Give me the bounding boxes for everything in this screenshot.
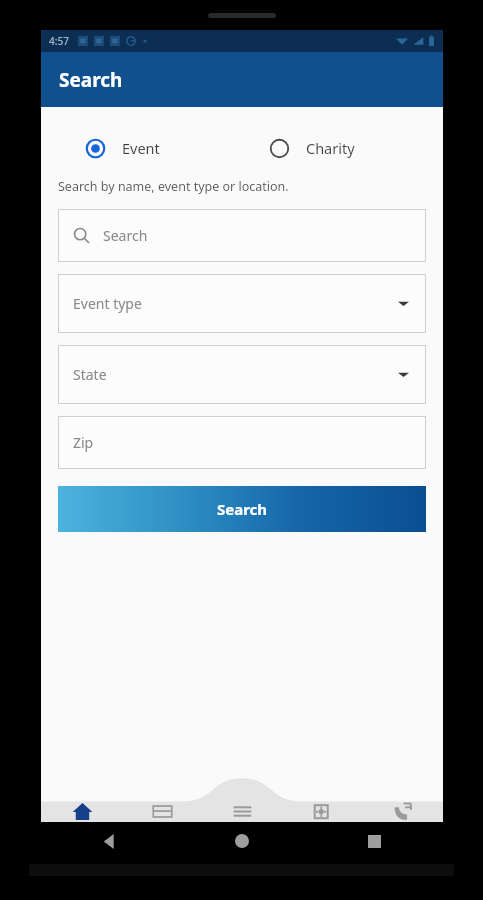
other: Wallet	[152, 801, 173, 822]
staticText: 4:57	[49, 34, 69, 48]
button[interactable]: Zip	[58, 416, 426, 469]
button[interactable]: Wallet	[123, 799, 201, 837]
other: Home	[72, 801, 93, 822]
staticText: Event	[122, 138, 160, 158]
staticText: Event type	[73, 294, 142, 313]
other: Menu	[232, 801, 253, 822]
staticText: Search	[217, 499, 268, 519]
button[interactable]: Event	[58, 134, 242, 162]
button[interactable]: Charity	[242, 134, 426, 162]
button[interactable]: Search	[58, 486, 426, 532]
button[interactable]: Contact us	[363, 799, 441, 837]
staticText: Charity	[306, 138, 355, 158]
button[interactable]: Recent apps	[351, 822, 397, 860]
staticText: Zip	[73, 433, 94, 452]
button[interactable]: State	[58, 345, 426, 404]
button[interactable]: Home	[43, 799, 121, 837]
button[interactable]: Search	[58, 209, 426, 262]
other: Contact us	[392, 801, 413, 822]
staticText: Search	[103, 226, 148, 245]
staticText: MENU	[232, 825, 253, 835]
button[interactable]: Back	[86, 822, 132, 860]
button[interactable]: Settings	[283, 799, 361, 837]
staticText: Search	[59, 67, 123, 93]
button[interactable]: Home	[219, 822, 265, 860]
other: Settings	[312, 801, 333, 822]
button[interactable]: Menu	[203, 799, 281, 837]
button[interactable]: Event type	[58, 274, 426, 333]
staticText: Search by name, event type or location.	[58, 178, 289, 195]
staticText: State	[73, 365, 107, 384]
